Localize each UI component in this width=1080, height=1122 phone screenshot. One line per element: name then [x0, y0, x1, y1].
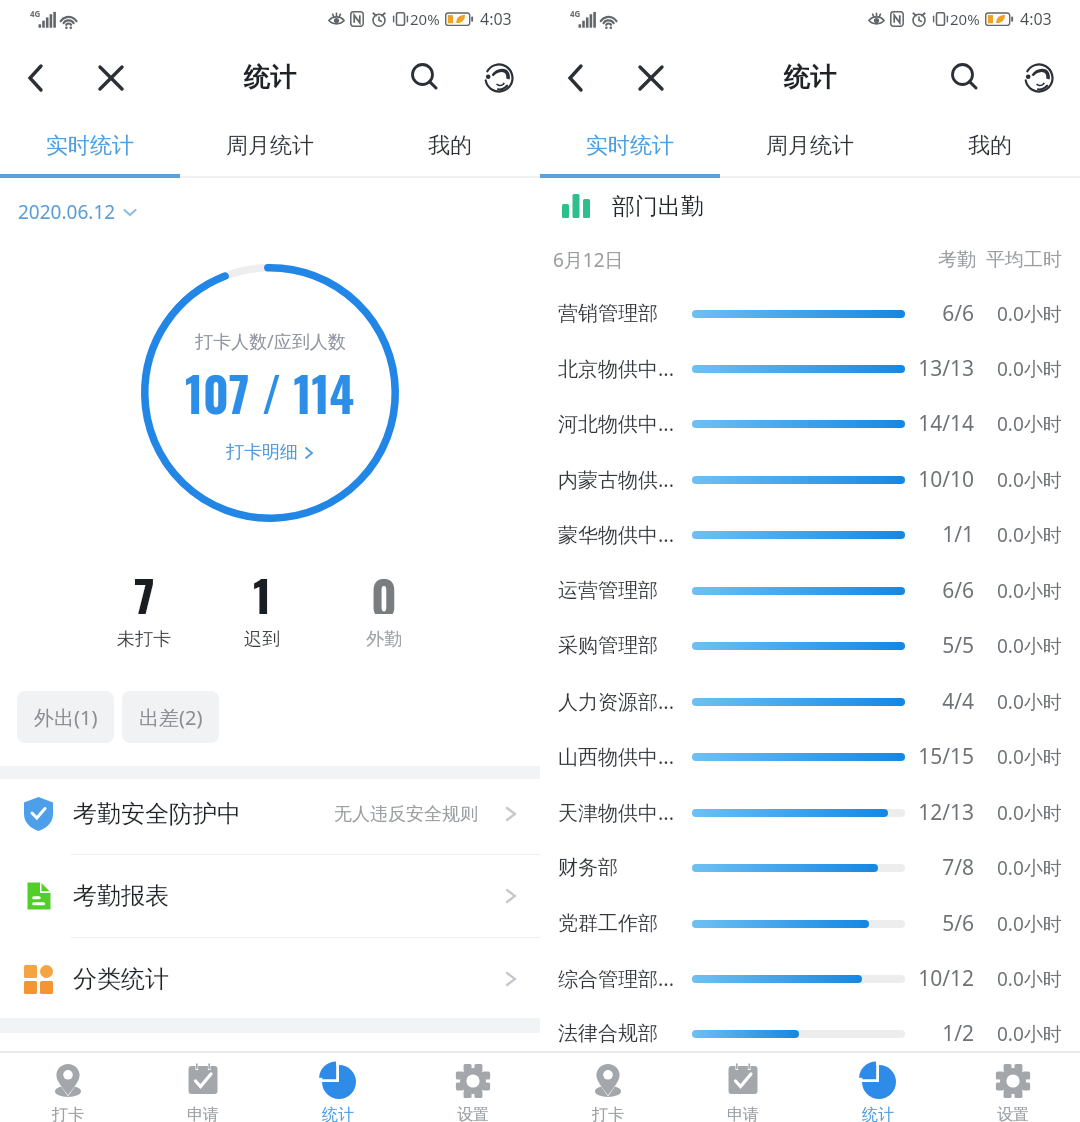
staticText: 分类统计	[73, 964, 169, 994]
staticText: 统计	[862, 1105, 894, 1122]
staticText: 7/8	[906, 853, 974, 882]
button[interactable]: 河北物供中...	[540, 396, 1080, 451]
staticText: 打卡	[52, 1105, 84, 1122]
staticText: 蒙华物供中...	[558, 521, 692, 548]
button[interactable]: 设置	[945, 1053, 1080, 1122]
staticText: 平均工时	[986, 248, 1062, 272]
staticText: 北京物供中...	[558, 355, 692, 382]
staticText: 考勤安全防护中	[73, 799, 241, 829]
button[interactable]: 实时统计	[0, 112, 180, 178]
button[interactable]: 财务部	[540, 840, 1080, 895]
staticText: 内蒙古物供...	[558, 466, 692, 493]
button[interactable]: 统计	[810, 1053, 945, 1122]
button[interactable]: 人力资源部...	[540, 674, 1080, 729]
staticText: 设置	[997, 1105, 1029, 1122]
staticText: 0.0小时	[997, 744, 1062, 770]
staticText: 统计	[784, 61, 836, 94]
button[interactable]: 1	[207, 562, 317, 651]
staticText: 人力资源部...	[558, 688, 692, 715]
button[interactable]: Close	[82, 44, 140, 112]
button[interactable]: 0	[329, 562, 439, 651]
button[interactable]: 申请	[135, 1053, 270, 1122]
button[interactable]: 内蒙古物供...	[540, 452, 1080, 507]
button[interactable]: Search	[936, 44, 994, 112]
button[interactable]: 营销管理部	[540, 286, 1080, 341]
button[interactable]: 天津物供中...	[540, 785, 1080, 840]
staticText: 0.0小时	[997, 689, 1062, 715]
button[interactable]: 统计	[270, 1053, 405, 1122]
button[interactable]: 申请	[675, 1053, 810, 1122]
button[interactable]: 2020.06.12	[18, 199, 138, 225]
staticText: 6/6	[906, 576, 974, 605]
staticText: 周月统计	[226, 132, 314, 160]
button[interactable]: 周月统计	[720, 112, 900, 178]
staticText: 0.0小时	[997, 522, 1062, 548]
staticText: 0	[371, 562, 397, 614]
staticText: 设置	[457, 1105, 489, 1122]
button[interactable]: 实时统计	[540, 112, 720, 178]
staticText: 我的	[968, 132, 1012, 160]
staticText: 12/13	[906, 798, 974, 827]
staticText: 无人违反安全规则	[334, 803, 478, 826]
staticText: 0.0小时	[997, 356, 1062, 382]
staticText: 申请	[727, 1105, 759, 1122]
staticText: 外勤	[366, 628, 402, 651]
button[interactable]: 山西物供中...	[540, 729, 1080, 784]
staticText: 采购管理部	[558, 633, 692, 658]
staticText: 出差(2)	[139, 704, 203, 731]
staticText: 20%	[950, 9, 980, 29]
button[interactable]: 北京物供中...	[540, 341, 1080, 396]
staticText: 统计	[244, 61, 296, 94]
button[interactable]: 考勤报表	[0, 855, 540, 937]
button[interactable]: 打卡	[0, 1053, 135, 1122]
staticText: 15/15	[906, 742, 974, 771]
staticText: 迟到	[244, 628, 280, 651]
button[interactable]: 我的	[360, 112, 540, 178]
button[interactable]: 党群工作部	[540, 896, 1080, 951]
staticText: 1/1	[906, 520, 974, 549]
button[interactable]: 法律合规部	[540, 1006, 1080, 1061]
staticText: 统计	[322, 1105, 354, 1122]
button[interactable]: 设置	[405, 1053, 540, 1122]
staticText: 我的	[428, 132, 472, 160]
button[interactable]: 周月统计	[180, 112, 360, 178]
button[interactable]: Search	[396, 44, 454, 112]
staticText: 周月统计	[766, 132, 854, 160]
staticText: 107 / 114	[185, 358, 355, 428]
button[interactable]: 考勤安全防护中	[0, 774, 540, 854]
staticText: 0.0小时	[997, 911, 1062, 937]
staticText: 7	[134, 562, 155, 614]
staticText: 4G	[570, 8, 581, 19]
button[interactable]: Back	[8, 44, 66, 112]
button[interactable]: 采购管理部	[540, 618, 1080, 673]
staticText: 0.0小时	[997, 633, 1062, 659]
button[interactable]: Back	[548, 44, 606, 112]
staticText: 4/4	[906, 687, 974, 716]
staticText: 实时统计	[586, 132, 674, 160]
button[interactable]: 综合管理部...	[540, 951, 1080, 1006]
button[interactable]: 7	[89, 562, 199, 651]
button[interactable]: Customer service	[470, 44, 528, 112]
staticText: 1	[253, 562, 272, 614]
button[interactable]: 我的	[900, 112, 1080, 178]
staticText: 党群工作部	[558, 911, 692, 936]
button[interactable]: 打卡	[540, 1053, 675, 1122]
staticText: 0.0小时	[997, 1021, 1062, 1047]
staticText: 0.0小时	[997, 301, 1062, 327]
button[interactable]: 外出(1)	[17, 691, 114, 743]
staticText: 营销管理部	[558, 301, 692, 326]
staticText: 0.0小时	[997, 966, 1062, 992]
staticText: 4:03	[480, 8, 512, 30]
button[interactable]: 蒙华物供中...	[540, 507, 1080, 562]
staticText: 0.0小时	[997, 578, 1062, 604]
button[interactable]: 运营管理部	[540, 563, 1080, 618]
button[interactable]: 打卡明细	[226, 441, 315, 464]
staticText: 未打卡	[117, 628, 171, 651]
staticText: 5/6	[906, 909, 974, 938]
staticText: 20%	[410, 9, 440, 29]
button[interactable]: Close	[622, 44, 680, 112]
button[interactable]: Customer service	[1010, 44, 1068, 112]
button[interactable]: 分类统计	[0, 938, 540, 1020]
button[interactable]: 出差(2)	[122, 691, 219, 743]
staticText: 4G	[30, 8, 41, 19]
